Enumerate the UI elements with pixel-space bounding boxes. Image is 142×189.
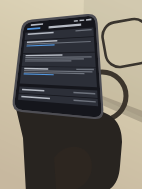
button[interactable]: Phone settings screen	[0, 0, 142, 189]
